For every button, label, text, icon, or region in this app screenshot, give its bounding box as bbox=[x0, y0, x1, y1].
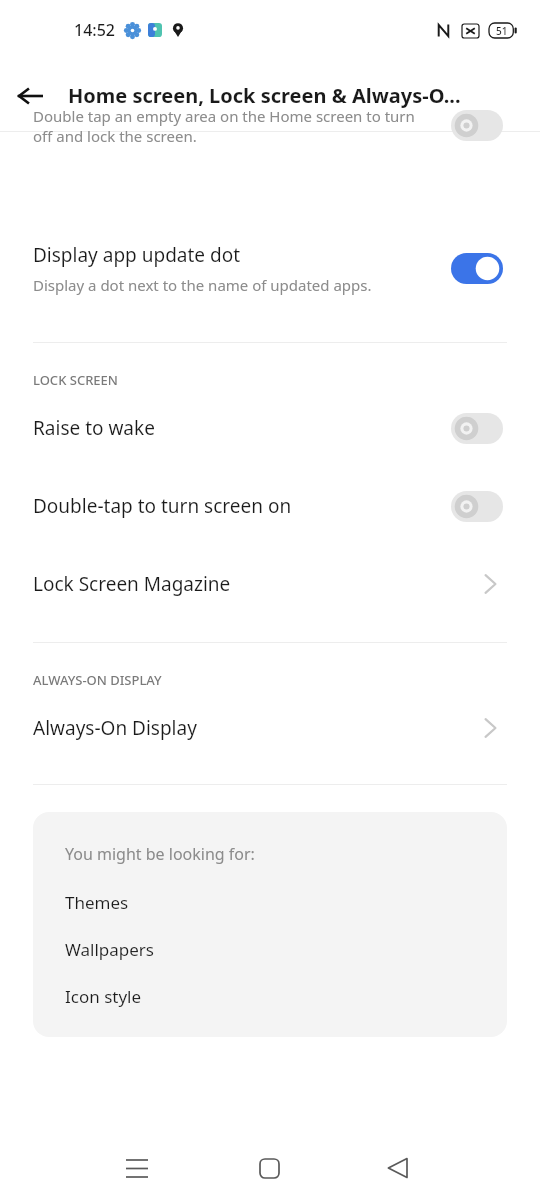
button[interactable]: Themes bbox=[65, 891, 483, 914]
staticText: Raise to wake bbox=[33, 415, 155, 441]
staticText: Double tap an empty area on the Home scr… bbox=[33, 106, 433, 146]
staticText: 51 bbox=[496, 24, 508, 38]
button[interactable]: Back bbox=[367, 1138, 427, 1198]
button[interactable]: Lock Screen Magazine bbox=[0, 545, 540, 623]
button[interactable]: Toggle off bbox=[451, 413, 503, 444]
staticText: Display a dot next to the name of update… bbox=[33, 275, 372, 295]
staticText: Double-tap to turn screen on bbox=[33, 493, 292, 519]
button[interactable]: Icon style bbox=[65, 985, 483, 1008]
staticText: Always-On Display bbox=[33, 715, 197, 741]
staticText: Home screen, Lock screen & Always-O... bbox=[68, 82, 461, 109]
button[interactable]: Toggle off bbox=[451, 110, 503, 141]
button[interactable]: Raise to wake bbox=[0, 389, 540, 467]
staticText: Display app update dot bbox=[33, 242, 241, 268]
other: Open bbox=[477, 715, 503, 741]
staticText: Icon style bbox=[65, 985, 142, 1008]
staticText: Themes bbox=[65, 891, 129, 914]
staticText: Lock Screen Magazine bbox=[33, 571, 231, 597]
staticText: Wallpapers bbox=[65, 938, 154, 961]
button[interactable]: Toggle on bbox=[451, 253, 503, 284]
staticText: ALWAYS-ON DISPLAY bbox=[33, 671, 162, 689]
button[interactable]: Toggle off bbox=[451, 491, 503, 522]
button[interactable]: Display app update dot bbox=[0, 222, 540, 314]
other: Open bbox=[477, 571, 503, 597]
button[interactable]: Recent apps bbox=[107, 1138, 167, 1198]
button[interactable]: Always-On Display bbox=[0, 689, 540, 767]
button[interactable]: Home bbox=[239, 1138, 299, 1198]
staticText: 14:52 bbox=[74, 19, 115, 41]
staticText: You might be looking for: bbox=[65, 843, 255, 865]
staticText: LOCK SCREEN bbox=[33, 371, 118, 389]
button[interactable]: Back bbox=[0, 66, 60, 126]
button[interactable]: Wallpapers bbox=[65, 938, 483, 961]
button[interactable]: Double-tap to turn screen on bbox=[0, 467, 540, 545]
